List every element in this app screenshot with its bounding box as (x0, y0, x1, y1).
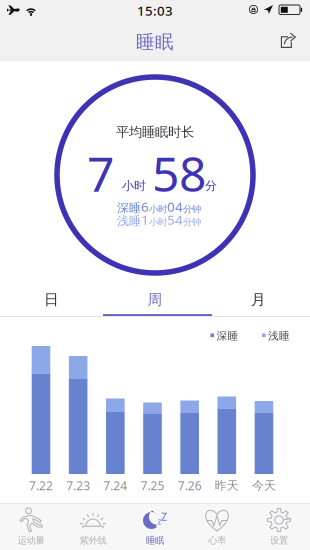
staticText: 深睡 (216, 329, 238, 342)
staticText: 7 (87, 141, 114, 205)
staticText: 昨天 (215, 478, 239, 493)
staticText: 设置 (270, 535, 288, 546)
staticText: 心率 (208, 535, 226, 546)
staticText: Z (161, 509, 167, 524)
staticText: 7.26 (178, 477, 202, 493)
staticText: 平均睡眠时长 (116, 124, 194, 140)
button[interactable]: 日 (0, 284, 103, 315)
staticText: 紫外线 (79, 535, 106, 546)
staticText: 小时 (122, 178, 146, 193)
button[interactable]: 周 (103, 284, 207, 315)
staticText: 浅睡 (268, 329, 290, 342)
staticText: 7.25 (140, 477, 164, 493)
button[interactable]: 设置 (248, 503, 310, 550)
staticText: 分钟 (183, 216, 201, 228)
staticText: z (157, 516, 161, 527)
button[interactable]: 运动量 (0, 503, 62, 550)
staticText: 今天 (252, 478, 276, 493)
staticText: 运动量 (17, 535, 44, 546)
staticText: 浅睡 (117, 214, 141, 228)
staticText: 7.23 (66, 477, 90, 493)
staticText: 54 (167, 211, 183, 228)
staticText: 分钟 (183, 203, 201, 215)
button[interactable]: z (124, 503, 186, 550)
staticText: 月 (251, 290, 266, 308)
staticText: 6 (141, 198, 149, 215)
button[interactable]: 心率 (186, 503, 248, 550)
button[interactable]: 月 (207, 284, 310, 315)
staticText: 7.24 (103, 477, 127, 493)
staticText: 15:03 (137, 2, 173, 19)
button[interactable]: Share (271, 25, 305, 55)
staticText: 小时 (149, 203, 167, 215)
staticText: 7.22 (29, 477, 53, 493)
staticText: 1 (141, 211, 149, 228)
staticText: 日 (44, 290, 59, 308)
staticText: 睡眠 (136, 30, 174, 53)
staticText: 04 (167, 198, 183, 215)
staticText: 深睡 (117, 201, 141, 215)
staticText: 睡眠 (146, 535, 164, 546)
staticText: 分 (205, 178, 217, 193)
staticText: 58 (152, 141, 206, 205)
button[interactable]: 紫外线 (62, 503, 124, 550)
staticText: 小时 (149, 216, 167, 228)
staticText: 周 (147, 290, 162, 308)
